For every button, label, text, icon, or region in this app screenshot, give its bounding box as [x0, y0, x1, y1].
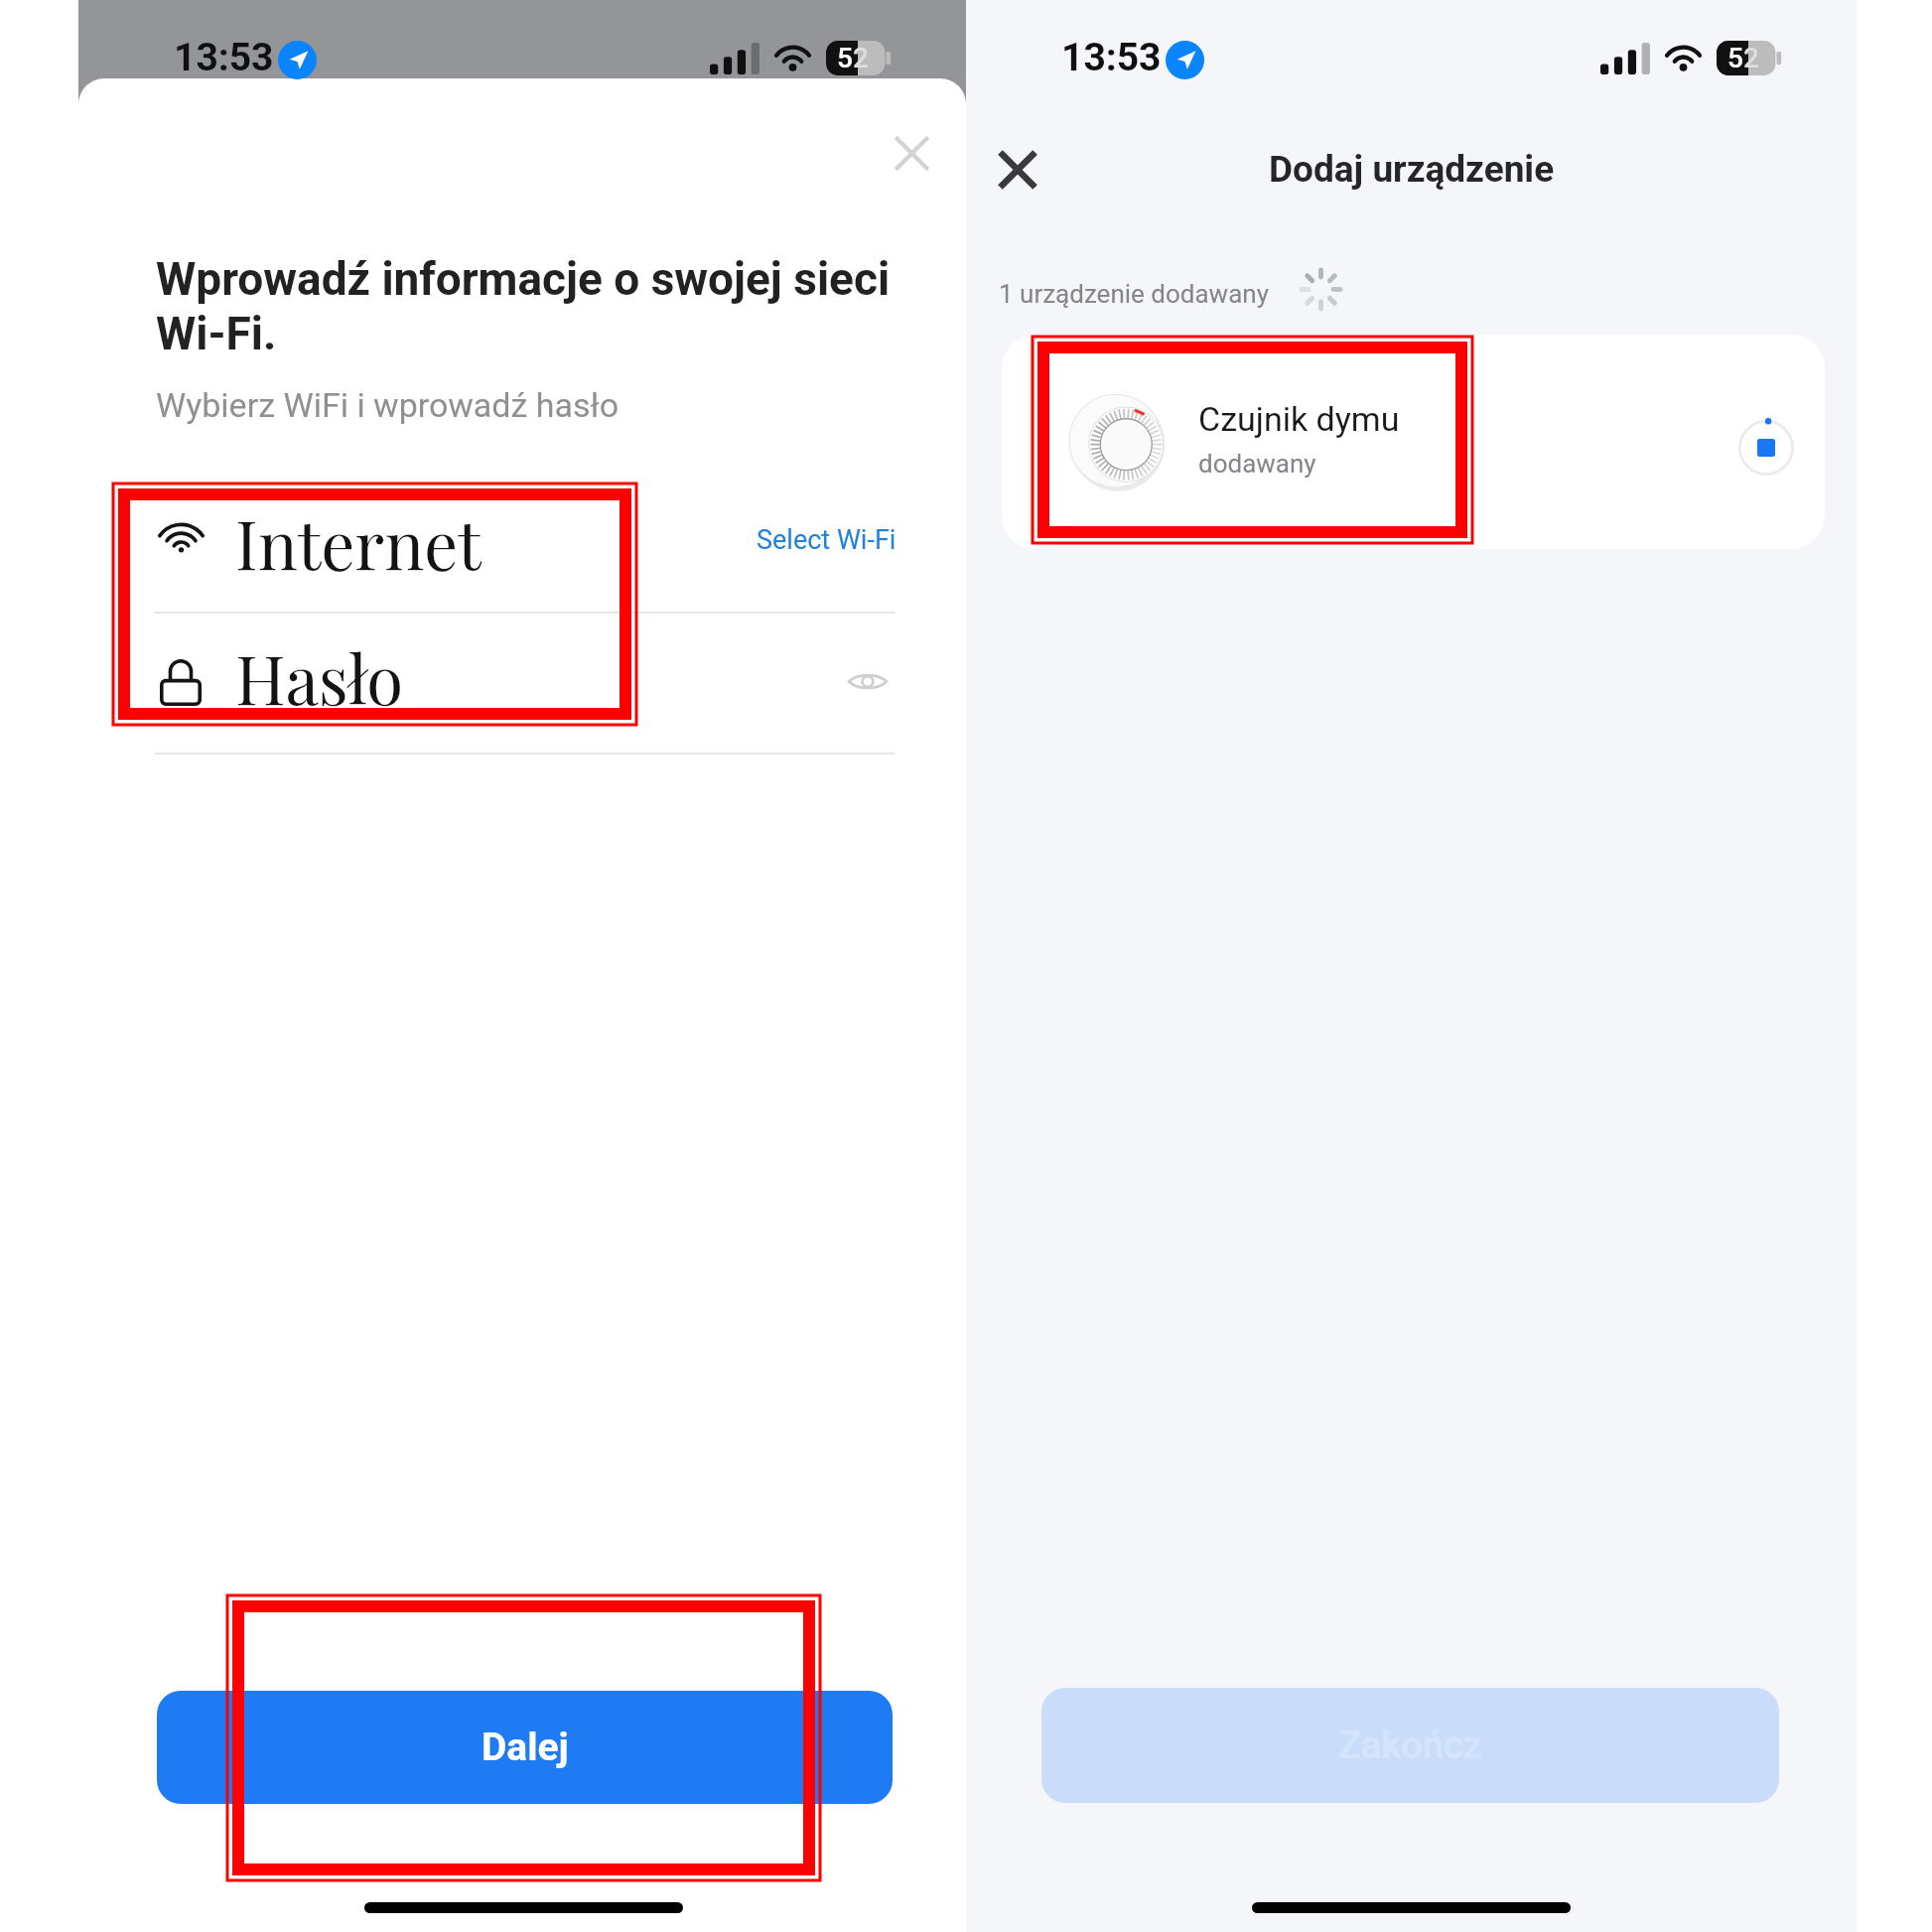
- staticText: 2: [853, 42, 869, 74]
- staticText: Wprowadź informacje o swojej sieci Wi-Fi…: [156, 252, 925, 361]
- staticText: Czujnik dymu: [1198, 399, 1400, 439]
- staticText: 2: [1743, 42, 1759, 74]
- button[interactable]: Dalej: [157, 1691, 893, 1804]
- staticText: Select Wi-Fi: [757, 524, 897, 556]
- staticText: dodawany: [1198, 449, 1316, 479]
- staticText: Hasło: [235, 633, 403, 722]
- button[interactable]: Show password: [814, 627, 921, 735]
- staticText: Wybierz WiFi i wprowadź hasło: [156, 385, 620, 425]
- staticText: 13:53: [1061, 35, 1162, 80]
- button[interactable]: Internet: [154, 501, 710, 609]
- button[interactable]: Czujnik dymu: [1002, 335, 1825, 549]
- button[interactable]: Zakończ: [1041, 1688, 1779, 1803]
- button[interactable]: Close: [864, 105, 960, 202]
- staticText: Zakończ: [1338, 1724, 1482, 1768]
- staticText: 1 urządzenie dodawany: [999, 279, 1269, 309]
- staticText: Dalej: [482, 1725, 569, 1770]
- button[interactable]: Select Wi-Fi: [730, 486, 923, 594]
- staticText: 5: [837, 42, 853, 74]
- staticText: Internet: [235, 498, 482, 587]
- button[interactable]: Close: [968, 120, 1067, 219]
- button[interactable]: Hasło: [154, 627, 710, 735]
- staticText: 5: [1727, 42, 1743, 74]
- staticText: Dodaj urządzenie: [1269, 148, 1555, 191]
- staticText: 13:53: [174, 35, 274, 80]
